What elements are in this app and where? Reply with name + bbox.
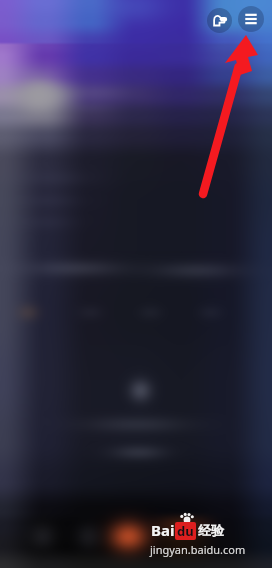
- staticText: jingyan.baidu.com: [150, 542, 246, 557]
- button[interactable]: Menu: [238, 6, 264, 32]
- staticText: du: [177, 522, 194, 540]
- staticText: Bai: [151, 520, 175, 540]
- button[interactable]: Gesture guide: [207, 8, 232, 33]
- staticText: 经验: [198, 522, 224, 538]
